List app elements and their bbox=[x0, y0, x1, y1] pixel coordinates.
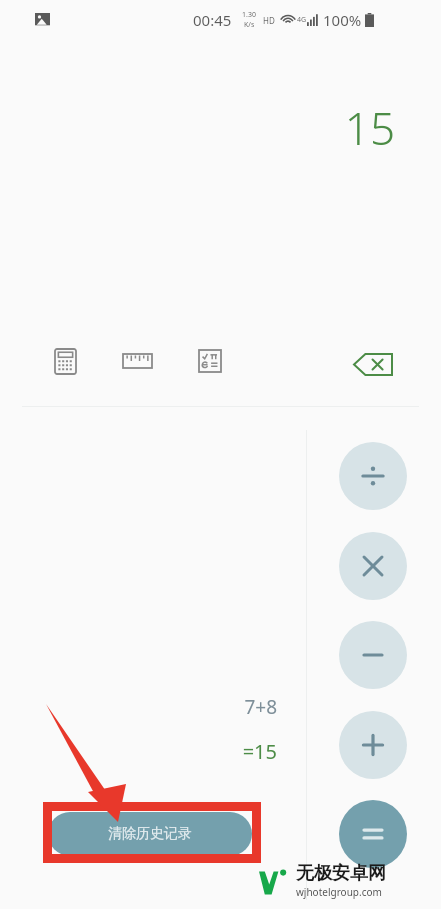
button[interactable]: Calculator bbox=[47, 343, 83, 379]
staticText: K/s bbox=[244, 20, 255, 30]
button[interactable]: Scientific bbox=[192, 343, 228, 379]
button[interactable]: Unit converter bbox=[119, 343, 155, 379]
button[interactable]: Equals bbox=[339, 800, 407, 868]
staticText: wjhotelgroup.com bbox=[296, 885, 382, 899]
button[interactable]: Multiply bbox=[339, 532, 407, 600]
staticText: =15 bbox=[0, 738, 277, 765]
staticText: 00:45 bbox=[193, 10, 232, 30]
staticText: 7+8 bbox=[0, 694, 277, 720]
staticText: 4G bbox=[297, 15, 307, 25]
button[interactable]: Minus bbox=[339, 621, 407, 689]
button[interactable]: 清除历史记录 bbox=[48, 812, 252, 856]
button[interactable]: Plus bbox=[339, 711, 407, 779]
button[interactable]: Backspace bbox=[352, 343, 394, 385]
staticText: 15 bbox=[0, 98, 395, 158]
staticText: 1.30 bbox=[242, 10, 256, 20]
staticText: 100% bbox=[323, 10, 362, 30]
button[interactable]: Divide bbox=[339, 442, 407, 510]
staticText: 无极安卓网 bbox=[296, 862, 386, 885]
staticText: HD bbox=[263, 15, 275, 26]
staticText: 清除历史记录 bbox=[108, 825, 192, 843]
